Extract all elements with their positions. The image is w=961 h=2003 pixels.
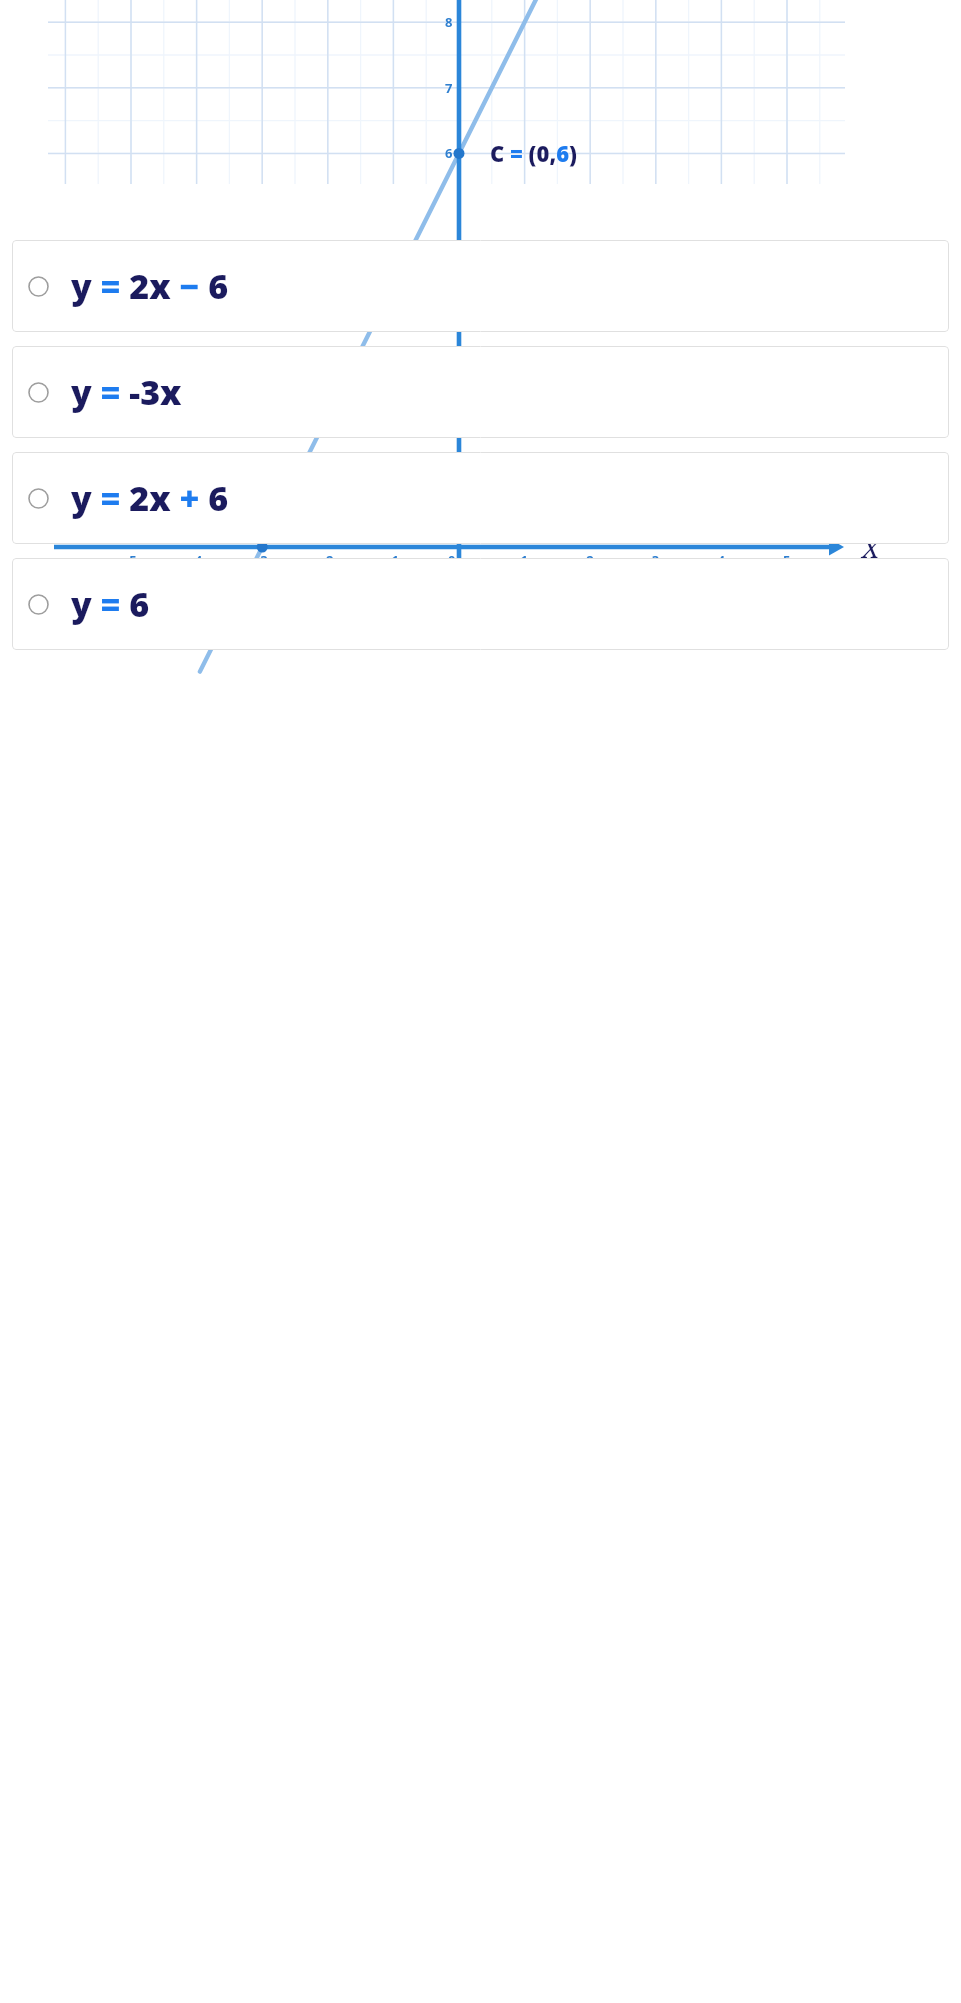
staticText: y = 2x + 6 <box>71 475 229 521</box>
button[interactable]: y = 2x − 6 <box>12 240 949 332</box>
button[interactable]: y = 6 <box>12 558 949 650</box>
staticText: y = -3x <box>71 369 182 415</box>
staticText: y = 2x − 6 <box>71 263 229 309</box>
button[interactable]: y = -3x <box>12 346 949 438</box>
button[interactable]: y = 2x + 6 <box>12 452 949 544</box>
staticText: y = 6 <box>71 581 150 627</box>
